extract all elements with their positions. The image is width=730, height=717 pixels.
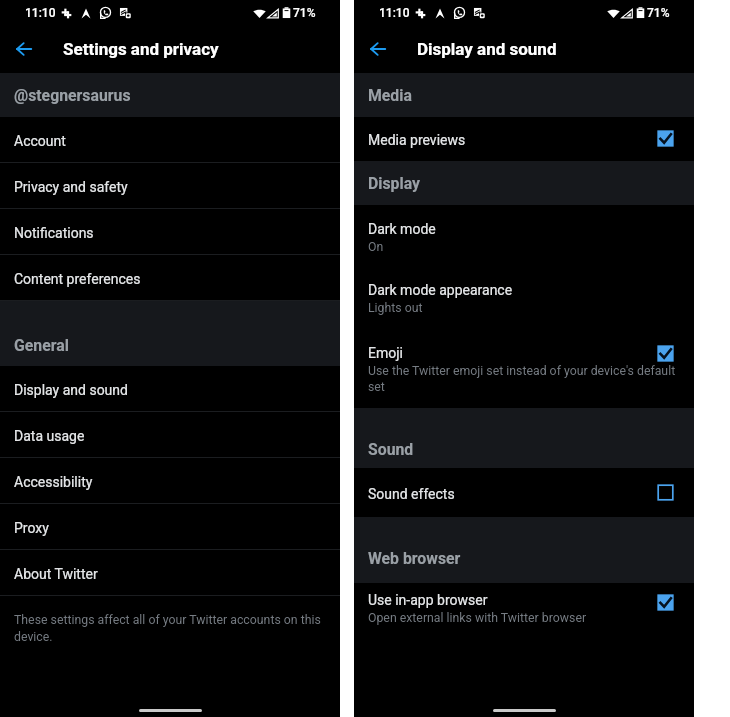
button[interactable]: Accessibility	[0, 458, 340, 504]
button[interactable]: Content preferences	[0, 255, 340, 301]
staticText: Emoji	[368, 345, 403, 361]
staticText: Web browser	[368, 549, 461, 568]
staticText: Content preferences	[14, 271, 141, 287]
button[interactable]: Privacy and safety	[0, 163, 340, 209]
staticText: Sound	[368, 440, 414, 459]
button[interactable]: Notifications	[0, 209, 340, 255]
button[interactable]: Dark mode appearance	[354, 266, 694, 328]
staticText: Media previews	[368, 132, 466, 148]
staticText: Display and sound	[417, 39, 557, 59]
button[interactable]: Use in-app browser	[354, 583, 694, 643]
button[interactable]: Navigate back	[10, 35, 38, 63]
staticText: Account	[14, 133, 66, 149]
staticText: Dark mode appearance	[368, 282, 513, 298]
staticText: 71%	[293, 6, 316, 20]
staticText: Accessibility	[14, 474, 93, 490]
button[interactable]: Proxy	[0, 504, 340, 550]
staticText: @stegnersaurus	[14, 86, 131, 105]
staticText: Media	[368, 86, 412, 105]
button[interactable]: Sound effects	[354, 468, 694, 517]
staticText: 11:10	[379, 6, 410, 20]
staticText: General	[14, 336, 69, 355]
staticText: On	[368, 240, 384, 254]
staticText: Dark mode	[368, 221, 436, 237]
staticText: Privacy and safety	[14, 179, 128, 195]
button[interactable]: Account	[0, 117, 340, 163]
staticText: These settings affect all of your Twitte…	[14, 613, 326, 644]
staticText: Notifications	[14, 225, 94, 241]
staticText: Sound effects	[368, 486, 455, 502]
staticText: Settings and privacy	[63, 39, 219, 59]
button[interactable]: Data usage	[0, 412, 340, 458]
staticText: About Twitter	[14, 566, 98, 582]
button[interactable]: Emoji	[354, 328, 694, 408]
staticText: Use the Twitter emoji set instead of you…	[368, 364, 680, 394]
button[interactable]: About Twitter	[0, 550, 340, 596]
staticText: Data usage	[14, 428, 85, 444]
staticText: Proxy	[14, 520, 49, 536]
staticText: Open external links with Twitter browser	[368, 611, 587, 625]
button[interactable]: Dark mode	[354, 205, 694, 266]
button[interactable]: Media previews	[354, 117, 694, 161]
button[interactable]: Display and sound	[0, 366, 340, 412]
staticText: 11:10	[25, 6, 56, 20]
staticText: Display and sound	[14, 382, 128, 398]
staticText: Lights out	[368, 301, 423, 315]
staticText: Use in-app browser	[368, 592, 488, 608]
staticText: Display	[368, 174, 420, 193]
button[interactable]: Navigate back	[364, 35, 392, 63]
staticText: 71%	[647, 6, 670, 20]
